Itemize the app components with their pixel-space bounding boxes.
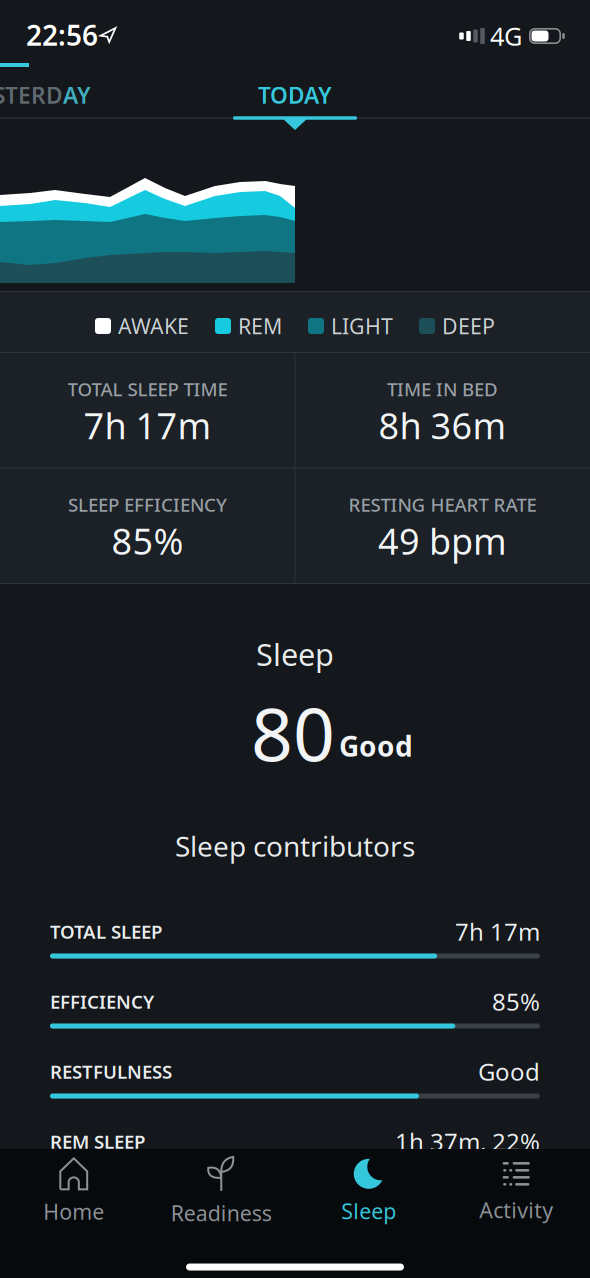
staticText: Good [478, 1056, 540, 1087]
staticText: SLEEP EFFICIENCY [68, 492, 227, 517]
staticText: 4G [490, 19, 522, 53]
staticText: Home [43, 1197, 104, 1226]
button[interactable]: Yesterday [0, 73, 127, 117]
staticText: 80 [251, 684, 335, 782]
staticText: 7h 17m [83, 401, 211, 449]
staticText: 49 bpm [378, 517, 507, 565]
staticText: 7h 17m [455, 916, 540, 947]
staticText: 22:56 [26, 16, 98, 54]
button[interactable]: Activity [446, 1157, 586, 1227]
staticText: Activity [479, 1196, 553, 1224]
staticText: STERD [0, 80, 63, 110]
staticText: TOTAL SLEEP TIME [67, 377, 227, 401]
staticText: Good [339, 727, 413, 765]
staticText: 85% [111, 517, 183, 565]
button[interactable]: Home [4, 1157, 144, 1227]
staticText: DEEP [442, 312, 495, 340]
staticText: TOTAL SLEEP [50, 919, 162, 944]
staticText: Readiness [171, 1199, 272, 1227]
staticText: AWAKE [118, 312, 189, 340]
staticText: REM [238, 312, 282, 340]
button[interactable]: TODAY [225, 73, 365, 117]
staticText: 8h 36m [378, 401, 506, 449]
button[interactable]: Readiness [151, 1157, 291, 1227]
staticText: 1h 37m, 22% [395, 1126, 540, 1157]
staticText: AY [63, 80, 91, 110]
staticText: TODAY [258, 80, 332, 110]
staticText: Sleep contributors [175, 827, 415, 865]
button[interactable]: Sleep [299, 1157, 439, 1227]
staticText: Sleep [256, 634, 334, 674]
staticText: Sleep [341, 1197, 396, 1225]
staticText: LIGHT [331, 312, 393, 340]
staticText: EFFICIENCY [50, 989, 154, 1014]
staticText: TIME IN BED [387, 377, 498, 401]
staticText: 85% [492, 986, 540, 1017]
staticText: REM SLEEP [50, 1129, 145, 1154]
staticText: RESTFULNESS [50, 1059, 172, 1084]
staticText: RESTING HEART RATE [348, 492, 536, 517]
